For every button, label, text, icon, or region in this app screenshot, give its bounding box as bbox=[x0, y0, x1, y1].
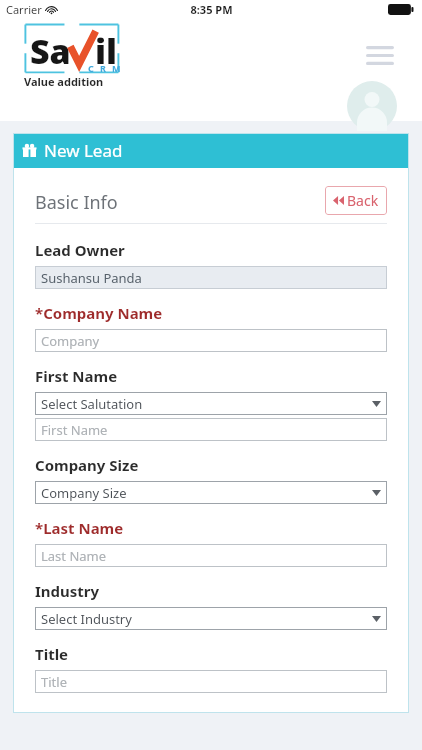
staticText: Industry bbox=[35, 581, 100, 601]
button[interactable]: Menu bbox=[358, 38, 402, 72]
staticText: 8:35 PM bbox=[190, 2, 233, 17]
button[interactable]: Salvil CRM home bbox=[18, 20, 142, 96]
staticText: Sa bbox=[30, 28, 71, 74]
button[interactable]: First Name bbox=[35, 418, 387, 441]
staticText: First Name bbox=[41, 421, 108, 439]
staticText: Value addition Normalised bbox=[24, 74, 144, 89]
staticText: Carrier bbox=[6, 2, 42, 17]
staticText: R bbox=[100, 62, 106, 74]
button[interactable]: Company Size bbox=[35, 481, 387, 504]
staticText: Company Size bbox=[41, 484, 127, 502]
staticText: Select Industry bbox=[41, 610, 132, 628]
button[interactable]: Select Salutation bbox=[35, 392, 387, 415]
button[interactable]: Sushansu Panda bbox=[35, 266, 387, 289]
staticText: il bbox=[95, 28, 118, 74]
staticText: Company Size bbox=[35, 455, 139, 475]
staticText: M bbox=[112, 62, 121, 74]
staticText: *Company Name bbox=[35, 303, 163, 323]
staticText: Sushansu Panda bbox=[41, 269, 142, 287]
staticText: *Last Name bbox=[35, 518, 124, 538]
button[interactable]: New Lead bbox=[13, 133, 409, 168]
staticText: Title bbox=[35, 644, 69, 664]
staticText: First Name bbox=[35, 366, 118, 386]
staticText: Basic Info bbox=[35, 190, 118, 215]
button[interactable]: Last Name bbox=[35, 544, 387, 567]
button[interactable]: Select Industry bbox=[35, 607, 387, 630]
staticText: Company bbox=[41, 332, 100, 350]
button[interactable]: Company bbox=[35, 329, 387, 352]
button[interactable]: Profile bbox=[347, 81, 397, 131]
button[interactable]: Back bbox=[325, 186, 387, 215]
staticText: C bbox=[88, 62, 94, 74]
staticText: Select Salutation bbox=[41, 395, 143, 413]
button[interactable]: Title bbox=[35, 670, 387, 693]
staticText: Last Name bbox=[41, 547, 107, 565]
staticText: Back bbox=[347, 191, 379, 210]
staticText: New Lead bbox=[44, 139, 123, 162]
staticText: Lead Owner bbox=[35, 240, 125, 260]
staticText: Title bbox=[41, 673, 67, 691]
